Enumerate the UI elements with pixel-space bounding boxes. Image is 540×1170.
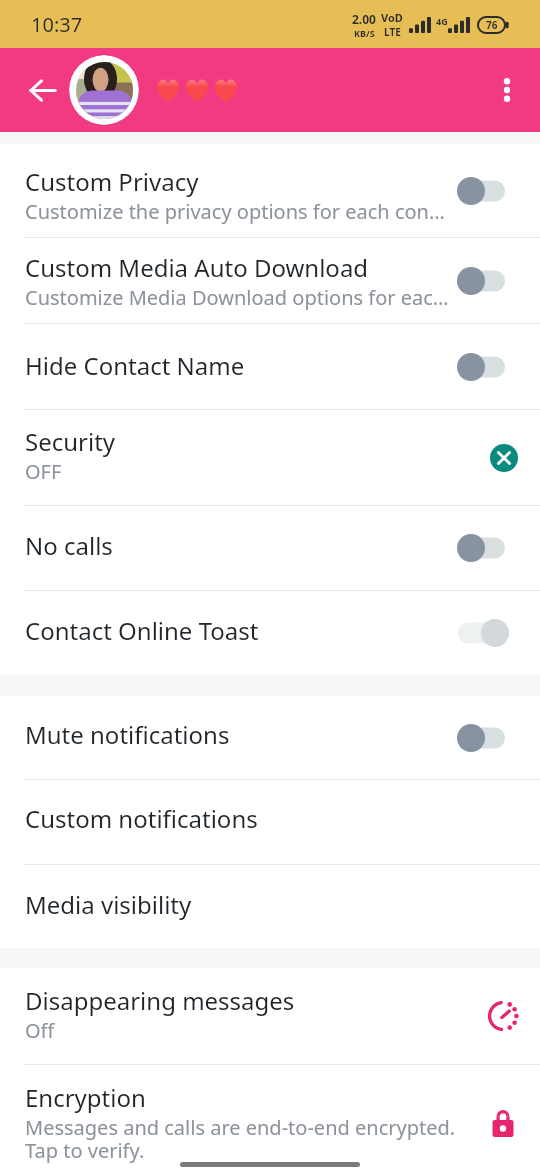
button[interactable]: More options (485, 68, 529, 112)
staticText: 76 (486, 18, 498, 32)
button[interactable]: Profile photo (69, 55, 139, 125)
staticText: Contact Online Toast (25, 614, 259, 647)
staticText: LTE (384, 25, 401, 39)
staticText: Custom Privacy (25, 165, 199, 198)
staticText: 4G (436, 15, 448, 27)
staticText: Security (25, 425, 116, 458)
staticText: Off (25, 1017, 55, 1044)
button[interactable]: Back (20, 68, 64, 112)
staticText: VoD (381, 10, 403, 25)
staticText: Encryption (25, 1081, 146, 1114)
staticText: Media visibility (25, 888, 192, 921)
button[interactable]: Mute notifications (0, 696, 540, 779)
button[interactable]: Hide Contact Name (0, 324, 540, 409)
button[interactable]: Custom Privacy (0, 144, 540, 237)
staticText: Customize Media Download options for eac… (25, 284, 449, 311)
staticText: Custom notifications (25, 802, 258, 835)
staticText: Messages and calls are end-to-end encryp… (25, 1114, 456, 1164)
button[interactable]: Contact Online Toast (0, 591, 540, 674)
staticText: No calls (25, 529, 113, 562)
staticText: 2.00 (352, 11, 376, 27)
button[interactable]: Custom notifications (0, 780, 540, 864)
staticText: KB/S (354, 27, 375, 39)
button[interactable]: Custom Media Auto Download (0, 238, 540, 323)
staticText: Custom Media Auto Download (25, 251, 369, 284)
staticText: Hide Contact Name (25, 349, 245, 382)
button[interactable]: Security (0, 410, 540, 505)
button[interactable]: Media visibility (0, 865, 540, 948)
staticText: OFF (25, 458, 62, 485)
staticText: Disappearing messages (25, 984, 295, 1017)
button[interactable]: Disappearing messages (0, 968, 540, 1064)
staticText: 10:37 (31, 11, 83, 38)
button[interactable]: Encryption (0, 1065, 540, 1169)
button[interactable]: No calls (0, 506, 540, 590)
staticText: Customize the privacy options for each c… (25, 198, 450, 225)
staticText: Mute notifications (25, 718, 230, 751)
